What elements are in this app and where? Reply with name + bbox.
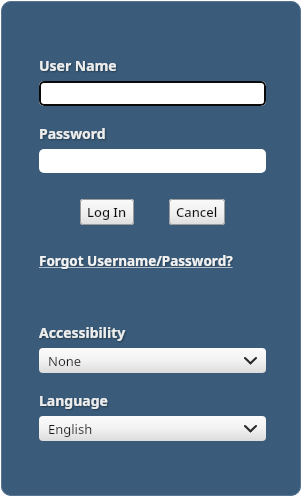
staticText: Language (39, 391, 108, 410)
staticText: English (48, 420, 93, 438)
staticText: Accessibility (39, 323, 126, 342)
staticText: Log In (87, 203, 127, 221)
button[interactable]: Cancel (169, 199, 225, 225)
staticText: Forgot Username/Password? (39, 252, 233, 270)
button[interactable]: Password input (39, 149, 266, 173)
staticText: Cancel (176, 203, 218, 221)
button[interactable]: User Name input (39, 81, 266, 106)
staticText: Password (39, 124, 106, 143)
staticText: User Name (39, 56, 117, 75)
staticText: None (48, 352, 82, 370)
button[interactable]: Accessibility (39, 348, 266, 373)
button[interactable]: Log In (80, 199, 134, 225)
button[interactable]: Forgot Username/Password? (39, 252, 233, 270)
button[interactable]: Language (39, 416, 266, 441)
